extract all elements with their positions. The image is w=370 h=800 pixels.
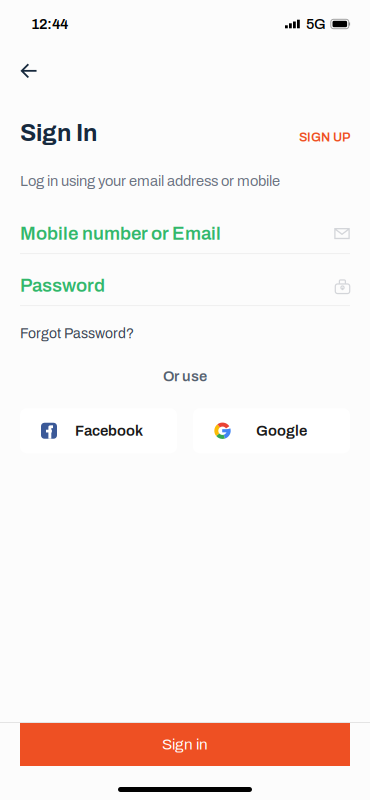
staticText: Password: [20, 275, 105, 296]
staticText: 5G: [306, 16, 326, 32]
staticText: Sign in: [162, 736, 208, 753]
staticText: Or use: [163, 368, 207, 384]
button[interactable]: Forgot Password?: [20, 326, 350, 341]
staticText: Log in using your email address or mobil…: [20, 173, 280, 189]
button[interactable]: Sign in: [20, 723, 350, 766]
button[interactable]: Facebook: [20, 408, 177, 453]
staticText: Mobile number or Email: [20, 223, 221, 244]
staticText: SIGN UP: [299, 130, 350, 144]
button[interactable]: SIGN UP: [299, 130, 350, 146]
staticText: Sign In: [20, 120, 97, 146]
staticText: Google: [256, 423, 307, 439]
staticText: Facebook: [75, 423, 143, 439]
staticText: Forgot Password?: [20, 326, 134, 341]
button[interactable]: Back: [12, 54, 46, 88]
staticText: 12:44: [31, 16, 68, 32]
button[interactable]: Google: [193, 408, 350, 453]
